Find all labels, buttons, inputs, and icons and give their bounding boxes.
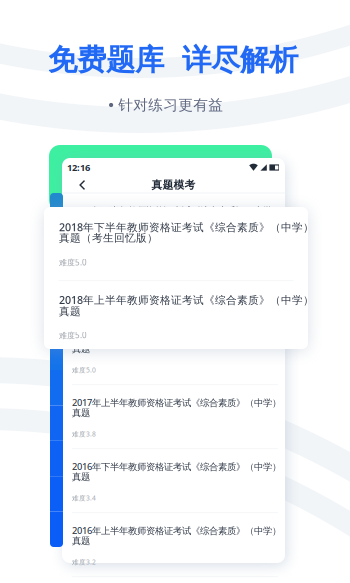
staticText: 真题模考 — [151, 178, 195, 191]
staticText: 2017年上半年教师资格证考试《综合素质》（中学） — [72, 396, 281, 409]
staticText: 难度5.0 — [59, 257, 87, 268]
staticText: 真题 — [59, 305, 81, 318]
staticText: 真题 — [72, 407, 90, 419]
button[interactable]: 2018年下半年教师资格证考试《综合素质》（中学） — [62, 193, 285, 257]
button[interactable]: 2018年上半年教师资格证考试《综合素质》（中学） — [44, 281, 308, 355]
button[interactable]: 2018年上半年教师资格证考试《综合素质》（中学） — [62, 257, 285, 321]
staticText: 真题 — [72, 343, 90, 355]
button[interactable]: 2016年下半年教师资格证考试《综合素质》（中学） — [62, 449, 285, 513]
staticText: 针对练习更有益 — [118, 96, 223, 114]
staticText: 2016年上半年教师资格证考试《综合素质》（中学） — [72, 524, 281, 537]
staticText: 12:16 — [67, 161, 90, 174]
button[interactable]: 2017年上半年教师资格证考试《综合素质》（中学） — [62, 385, 285, 449]
button[interactable]: Back — [75, 178, 89, 192]
staticText: 2018年下半年教师资格证考试《综合素质》（中学） — [72, 204, 281, 217]
staticText: 难度5.0 — [72, 238, 96, 246]
staticText: 2018年下半年教师资格证考试《综合素质》（中学） — [59, 220, 314, 234]
staticText: 真题（考生回忆版） — [59, 231, 158, 244]
staticText: 难度3.2 — [72, 558, 96, 566]
staticText: 2017年下半年教师资格证考试《综合素质》（中学） — [72, 332, 281, 345]
staticText: 2018年上半年教师资格证考试《综合素质》（中学） — [59, 293, 314, 307]
staticText: 难度5.0 — [59, 330, 87, 340]
staticText: 难度5.0 — [72, 366, 96, 374]
button[interactable]: 2018年下半年教师资格证考试《综合素质》（中学） — [44, 207, 308, 281]
staticText: 免费题库 详尽解析 — [48, 42, 298, 78]
staticText: 真题（考生回忆版） — [72, 215, 153, 227]
staticText: 难度5.0 — [72, 302, 96, 310]
button[interactable]: 2017年下半年教师资格证考试《综合素质》（中学） — [62, 321, 285, 385]
staticText: 真题 — [72, 471, 90, 483]
button[interactable]: 2016年上半年教师资格证考试《综合素质》（中学） — [62, 513, 285, 577]
staticText: 难度3.4 — [72, 494, 96, 502]
staticText: 2016年下半年教师资格证考试《综合素质》（中学） — [72, 460, 281, 473]
staticText: 真题 — [72, 535, 90, 547]
staticText: 难度3.8 — [72, 430, 96, 438]
